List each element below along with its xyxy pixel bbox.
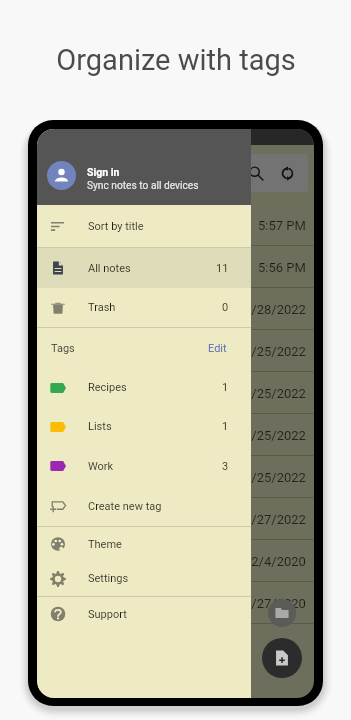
button[interactable]: Theme [37,527,251,561]
button[interactable]: 4/25/2022 [37,330,314,372]
staticText: Trash [88,301,116,314]
staticText: Tags [51,342,75,355]
staticText: Organize with tags [56,43,296,77]
staticText: Sort by title [88,220,144,233]
button[interactable]: 5:57 PM [37,204,314,246]
staticText: 1/27/2020 [244,596,306,611]
button[interactable]: Recipes [37,368,251,407]
staticText: 1 [222,420,229,433]
staticText: Edit [208,342,227,355]
staticText: 11 [216,262,229,275]
staticText: Recipes [88,381,127,394]
staticText: Settings [88,572,129,585]
staticText: 0 [222,301,229,314]
button[interactable]: Create new tag [37,486,251,526]
staticText: 4/25/2022 [244,428,306,443]
button[interactable]: New folder [268,599,296,627]
staticText: 4/27/2022 [244,512,306,527]
staticText: Lists [88,420,112,433]
button[interactable]: Support [37,597,251,631]
button[interactable]: 1/27/2020 [37,582,314,624]
button[interactable]: 4/28/2022 [37,288,314,330]
staticText: All notes [88,262,131,275]
button[interactable]: 4/27/2022 [37,498,314,540]
staticText: 3 [222,460,229,473]
staticText: Work [88,460,114,473]
button[interactable]: Sort by title [37,205,251,247]
button[interactable]: 4/25/2022 [37,414,314,456]
staticText: 4/25/2022 [244,470,306,485]
button[interactable]: Settings [37,561,251,596]
button[interactable]: 12/4/2020 [37,540,314,582]
button[interactable]: Trash [37,288,251,327]
button[interactable]: 5:56 PM [37,246,314,288]
button[interactable]: Sync [276,162,298,184]
staticText: 4/28/2022 [244,302,306,317]
button[interactable]: All notes [37,248,251,288]
button[interactable]: Work [37,446,251,486]
staticText: Sign in [87,166,120,178]
button[interactable]: Edit [206,338,229,359]
staticText: 4/25/2022 [244,344,306,359]
staticText: 5:56 PM [258,260,306,275]
staticText: 1 [222,381,229,394]
button[interactable]: 4/25/2022 [37,372,314,414]
staticText: Support [88,608,127,621]
button[interactable]: New note [262,638,302,678]
staticText: 4/25/2022 [244,386,306,401]
button[interactable]: Lists [37,407,251,446]
staticText: Sync notes to all devices [87,180,199,192]
button[interactable]: Search [245,162,267,184]
button[interactable]: 4/25/2022 [37,456,314,498]
staticText: 5:57 PM [258,218,306,233]
staticText: 12/4/2020 [244,554,306,569]
staticText: Theme [88,538,122,551]
staticText: Create new tag [88,500,162,513]
button[interactable]: Account [47,161,76,190]
